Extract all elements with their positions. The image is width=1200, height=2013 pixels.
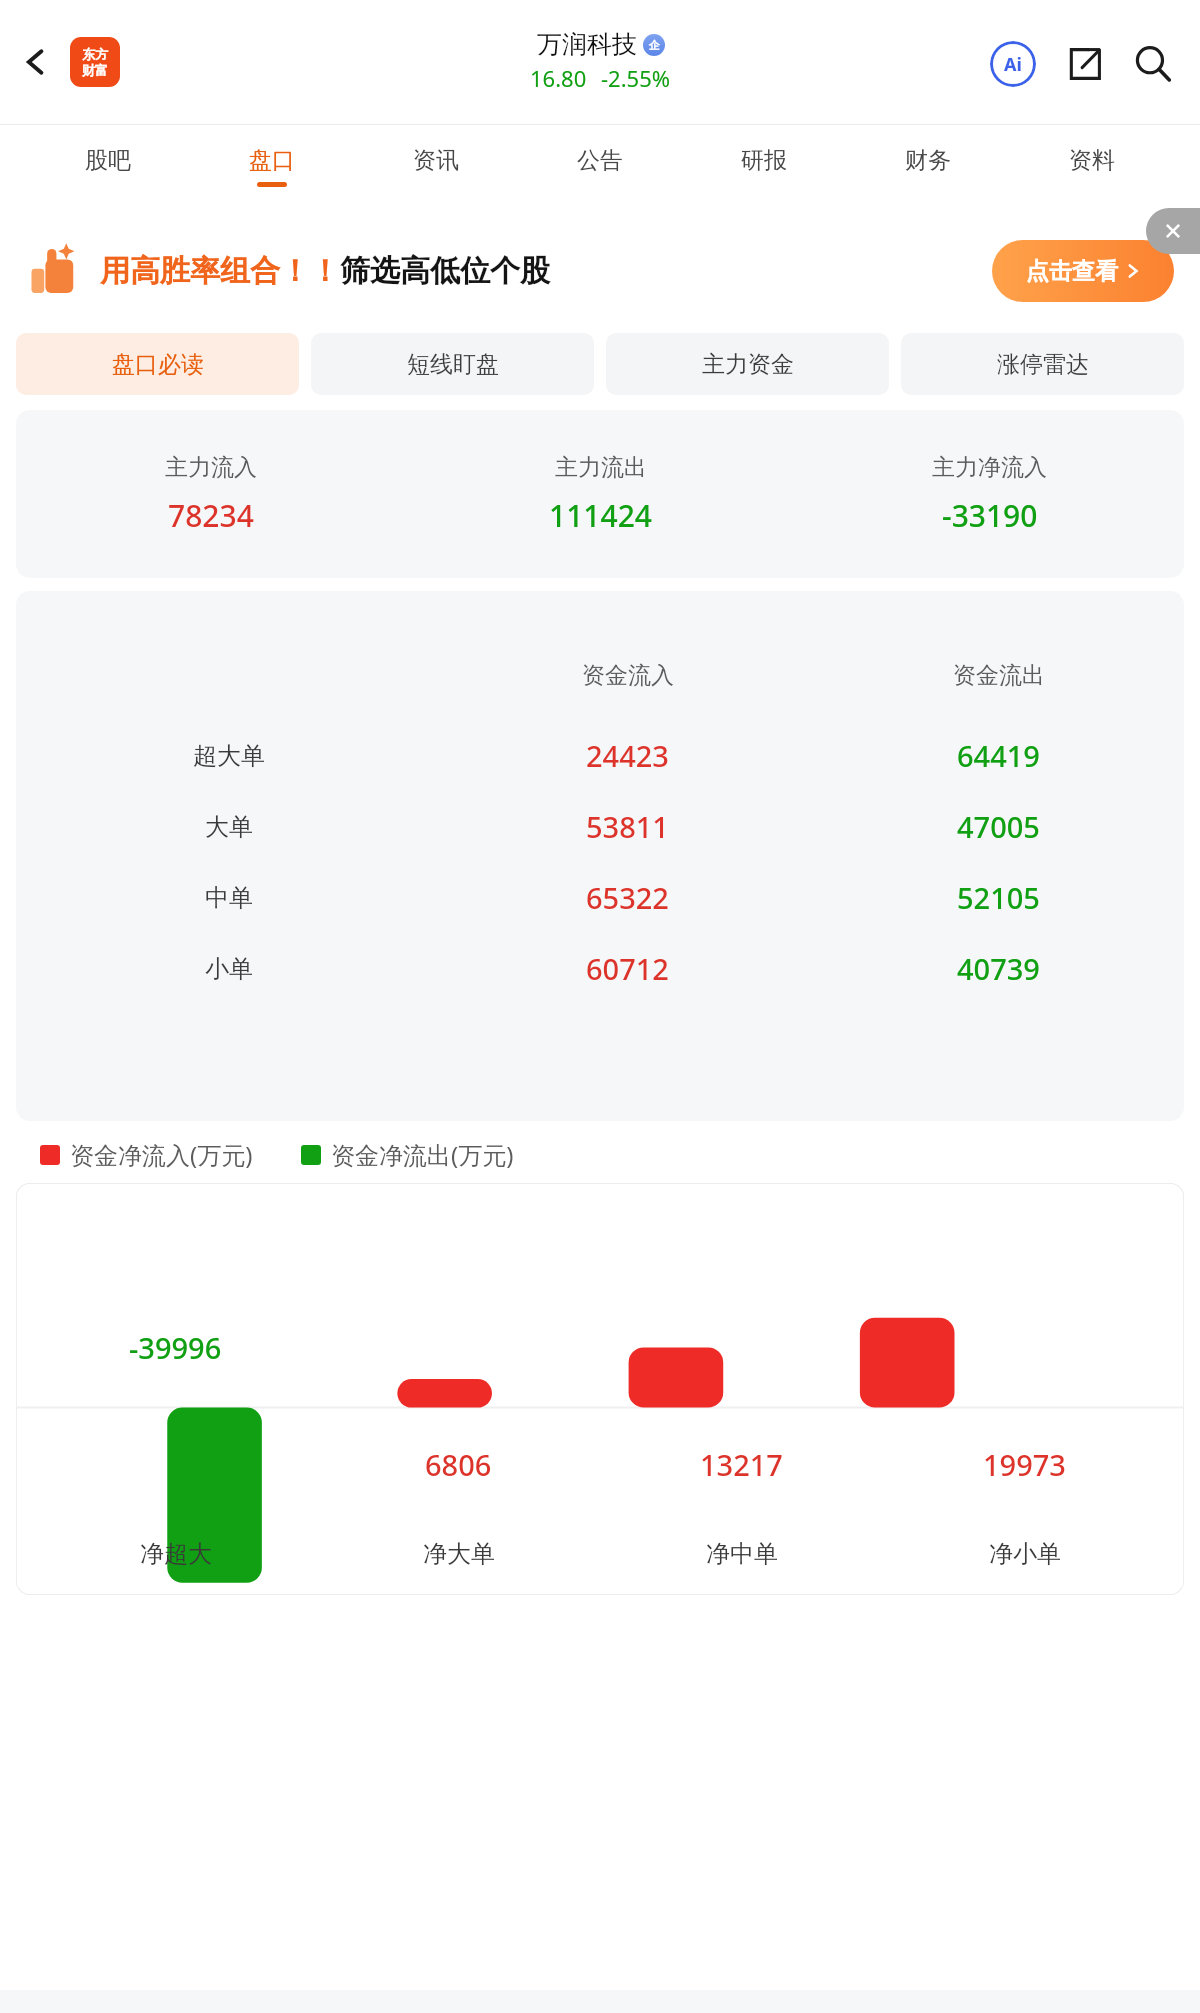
staticText: 大单 (205, 812, 253, 842)
button[interactable]: 盘口必读 (16, 333, 299, 395)
button[interactable]: 公告 (518, 125, 682, 208)
staticText: 涨停雷达 (997, 350, 1089, 379)
staticText: 13217 (700, 1445, 783, 1484)
button[interactable]: 盘口 (190, 125, 354, 208)
staticText: 64419 (957, 736, 1040, 775)
staticText: 用高胜率组合！！ (100, 252, 340, 290)
button[interactable]: Search (1124, 35, 1182, 93)
staticText: 万润科技 (537, 29, 637, 60)
button[interactable]: Close (1146, 208, 1200, 254)
staticText: 资金净流出(万元) (331, 1138, 514, 1171)
button[interactable]: Back (8, 34, 64, 90)
staticText: 点击查看 (1026, 257, 1118, 286)
staticText: 47005 (957, 807, 1040, 846)
staticText: -33190 (942, 495, 1038, 536)
staticText: 公告 (577, 146, 623, 175)
staticText: 52105 (957, 878, 1040, 917)
staticText: 53811 (586, 807, 669, 846)
staticText: 24423 (586, 736, 669, 775)
staticText: 净大单 (423, 1539, 495, 1569)
staticText: 40739 (957, 949, 1040, 988)
staticText: 东方 (82, 46, 108, 62)
button[interactable]: 财务 (846, 125, 1010, 208)
button[interactable]: Share (1056, 35, 1114, 93)
staticText: 盘口 (249, 146, 295, 175)
staticText: 研报 (741, 146, 787, 175)
staticText: 净中单 (706, 1539, 778, 1569)
staticText: 65322 (586, 878, 669, 917)
staticText: 财富 (82, 62, 108, 78)
staticText: 超大单 (193, 741, 265, 771)
staticText: 净小单 (989, 1539, 1061, 1569)
staticText: 资料 (1069, 146, 1115, 175)
staticText: 企 (649, 38, 660, 52)
staticText: -2.55% (601, 63, 671, 93)
staticText: 股吧 (85, 146, 131, 175)
staticText: 净超大 (140, 1539, 212, 1569)
staticText: Ai (1004, 52, 1022, 77)
staticText: 主力流出 (555, 453, 647, 482)
staticText: 短线盯盘 (407, 350, 499, 379)
staticText: 资金流入 (582, 661, 674, 690)
staticText: 主力净流入 (932, 453, 1047, 482)
staticText: 78234 (168, 495, 254, 536)
staticText: 16.80 (530, 63, 587, 93)
staticText: 小单 (205, 954, 253, 984)
staticText: 6806 (425, 1445, 492, 1484)
staticText: 中单 (205, 883, 253, 913)
staticText: 盘口必读 (112, 350, 204, 379)
staticText: 资讯 (413, 146, 459, 175)
button[interactable]: 资料 (1010, 125, 1174, 208)
staticText: 19973 (983, 1445, 1066, 1484)
staticText: 主力流入 (165, 453, 257, 482)
button[interactable]: 点击查看 (992, 240, 1174, 302)
button[interactable]: 东方财富 (70, 37, 120, 87)
staticText: 财务 (905, 146, 951, 175)
button[interactable]: 资金流入 (16, 591, 1184, 1121)
staticText: 主力资金 (702, 350, 794, 379)
button[interactable]: 研报 (682, 125, 846, 208)
staticText: 资金净流入(万元) (70, 1138, 253, 1171)
button[interactable]: 涨停雷达 (901, 333, 1184, 395)
button[interactable]: 股吧 (26, 125, 190, 208)
button[interactable]: AI 助手 (984, 35, 1042, 93)
staticText: 筛选高低位个股 (340, 252, 550, 290)
button[interactable]: 主力流入 (16, 410, 1184, 578)
button[interactable]: 短线盯盘 (311, 333, 594, 395)
staticText: 60712 (586, 949, 669, 988)
staticText: 111424 (549, 495, 652, 536)
staticText: 资金流出 (953, 661, 1045, 690)
staticText: -39996 (129, 1328, 222, 1367)
button[interactable]: 主力资金 (606, 333, 889, 395)
button[interactable]: -39996 (16, 1183, 1184, 1595)
button[interactable]: 资讯 (354, 125, 518, 208)
